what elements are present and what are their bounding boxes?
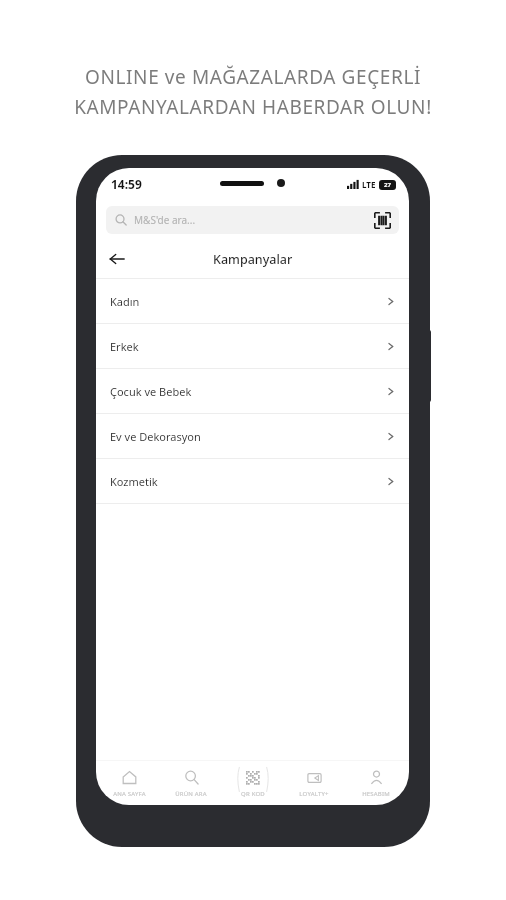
button[interactable]: Erkek — [96, 324, 409, 368]
button[interactable]: HESABIM — [347, 761, 405, 805]
button[interactable]: QR KOD — [224, 761, 282, 805]
staticText: Ev ve Dekorasyon — [110, 429, 201, 444]
button[interactable]: Barkod tara — [374, 212, 391, 229]
staticText: M&S'de ara... — [134, 213, 196, 227]
staticText: 27 — [384, 181, 391, 189]
staticText: KAMPANYALARDAN HABERDAR OLUN! — [74, 94, 432, 120]
button[interactable]: Geri — [102, 244, 132, 274]
staticText: HESABIM — [362, 790, 390, 798]
staticText: 14:59 — [111, 176, 142, 192]
button[interactable]: M&S'de ara... — [106, 206, 399, 234]
staticText: Erkek — [110, 339, 139, 354]
staticText: ONLINE ve MAĞAZALARDA GEÇERLİ — [85, 64, 421, 90]
button[interactable]: Ev ve Dekorasyon — [96, 414, 409, 458]
staticText: ANA SAYFA — [113, 790, 146, 798]
button[interactable]: ÜRÜN ARA — [162, 761, 220, 805]
staticText: ÜRÜN ARA — [175, 790, 207, 798]
button[interactable]: LOYALTY+ — [285, 761, 343, 805]
staticText: LTE — [362, 179, 376, 190]
button[interactable]: Kadın — [96, 279, 409, 323]
staticText: Kadın — [110, 294, 140, 309]
staticText: Kampanyalar — [213, 251, 293, 268]
staticText: Kozmetik — [110, 474, 158, 489]
staticText: QR KOD — [241, 790, 265, 798]
button[interactable]: ANA SAYFA — [100, 761, 158, 805]
staticText: Çocuk ve Bebek — [110, 384, 192, 399]
button[interactable]: Çocuk ve Bebek — [96, 369, 409, 413]
staticText: LOYALTY+ — [299, 790, 329, 798]
button[interactable]: Kozmetik — [96, 459, 409, 503]
